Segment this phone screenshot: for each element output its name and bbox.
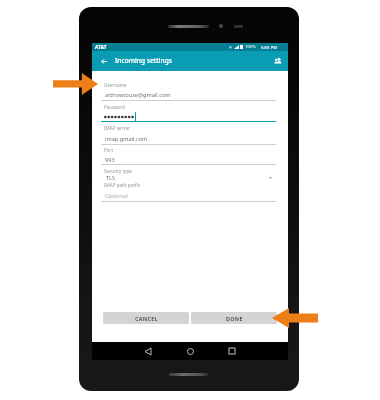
button[interactable]: Home [182, 343, 198, 359]
button[interactable]: Recents [224, 343, 240, 359]
staticText: DONE [226, 315, 243, 322]
staticText: TLS [106, 174, 116, 182]
staticText: Username [104, 82, 127, 88]
button[interactable]: Back [140, 343, 156, 359]
staticText: Password [104, 104, 125, 110]
staticText: Port [104, 147, 114, 153]
staticText: atthowtouse@gmail.com [105, 91, 171, 99]
staticText: Incoming settings [115, 56, 172, 65]
button[interactable]: CANCEL [103, 312, 189, 324]
staticText: Security type [104, 168, 132, 174]
staticText: CANCEL [135, 315, 158, 322]
staticText: AT&T [95, 44, 107, 50]
button[interactable]: Contacts [270, 53, 286, 69]
staticText: imap.gmail.com [105, 135, 148, 143]
staticText: Optional [105, 192, 128, 200]
staticText: IMAP path prefix [104, 182, 141, 188]
staticText: 100% [245, 44, 256, 50]
staticText: IMAP server [104, 125, 131, 131]
staticText: 5:55 PM [261, 44, 278, 50]
button[interactable]: Back [96, 53, 112, 69]
button[interactable]: DONE [191, 312, 277, 324]
staticText: 993 [105, 156, 115, 164]
